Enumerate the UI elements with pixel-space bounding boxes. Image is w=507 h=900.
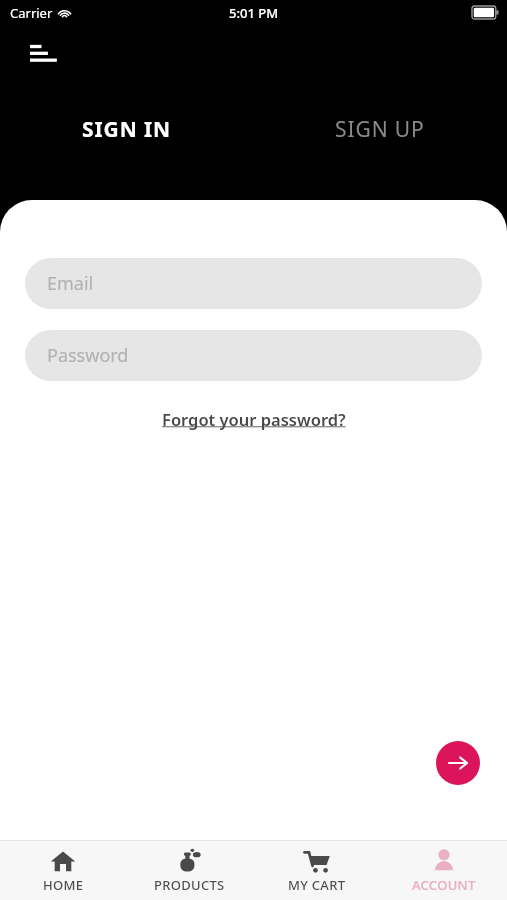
button[interactable]: SIGN IN bbox=[0, 107, 253, 151]
staticText: Password bbox=[47, 343, 129, 368]
staticText: HOME bbox=[43, 876, 84, 894]
button[interactable]: Menu bbox=[23, 36, 65, 70]
button[interactable]: PRODUCTS bbox=[126, 841, 253, 900]
staticText: Email bbox=[47, 271, 94, 296]
staticText: MY CART bbox=[288, 876, 346, 894]
button[interactable]: Email bbox=[25, 258, 482, 309]
staticText: SIGN IN bbox=[82, 115, 172, 144]
button[interactable]: HOME bbox=[0, 841, 126, 900]
button[interactable]: Password bbox=[25, 330, 482, 381]
staticText: Forgot your password? bbox=[162, 408, 346, 430]
button[interactable]: Forgot your password? bbox=[156, 403, 352, 435]
button[interactable]: SIGN UP bbox=[253, 107, 507, 151]
button[interactable]: Continue bbox=[436, 741, 480, 785]
button[interactable]: ACCOUNT bbox=[380, 841, 507, 900]
staticText: PRODUCTS bbox=[154, 876, 225, 894]
staticText: 5:01 PM bbox=[229, 4, 279, 22]
staticText: SIGN UP bbox=[335, 115, 425, 144]
button[interactable]: MY CART bbox=[253, 841, 380, 900]
staticText: Carrier bbox=[10, 4, 53, 22]
staticText: ACCOUNT bbox=[412, 876, 476, 894]
